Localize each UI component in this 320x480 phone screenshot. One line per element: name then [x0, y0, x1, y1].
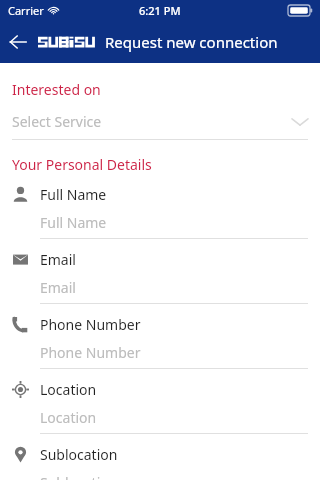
- staticText: Phone Number: [40, 343, 141, 362]
- staticText: Interested on: [12, 80, 101, 99]
- staticText: Email: [40, 250, 76, 269]
- staticText: Full Name: [40, 185, 107, 204]
- staticText: Location: [40, 408, 97, 427]
- staticText: Sublocation: [40, 473, 118, 480]
- button[interactable]: Sublocation: [0, 442, 320, 480]
- staticText: Carrier: [8, 3, 44, 18]
- button[interactable]: Phone Number: [0, 312, 320, 377]
- staticText: Email: [40, 278, 76, 297]
- staticText: Phone Number: [40, 315, 141, 334]
- staticText: Full Name: [40, 213, 107, 232]
- button[interactable]: Back: [0, 24, 36, 60]
- staticText: Your Personal Details: [12, 155, 152, 174]
- button[interactable]: Full Name: [0, 182, 320, 247]
- button[interactable]: Select Service: [0, 108, 320, 135]
- staticText: Select Service: [12, 112, 292, 131]
- staticText: Location: [40, 380, 97, 399]
- staticText: Sublocation: [40, 445, 118, 464]
- staticText: Request new connection: [105, 32, 278, 52]
- button[interactable]: Location: [0, 377, 320, 442]
- staticText: 6:21 PM: [139, 3, 181, 18]
- button[interactable]: Email: [0, 247, 320, 312]
